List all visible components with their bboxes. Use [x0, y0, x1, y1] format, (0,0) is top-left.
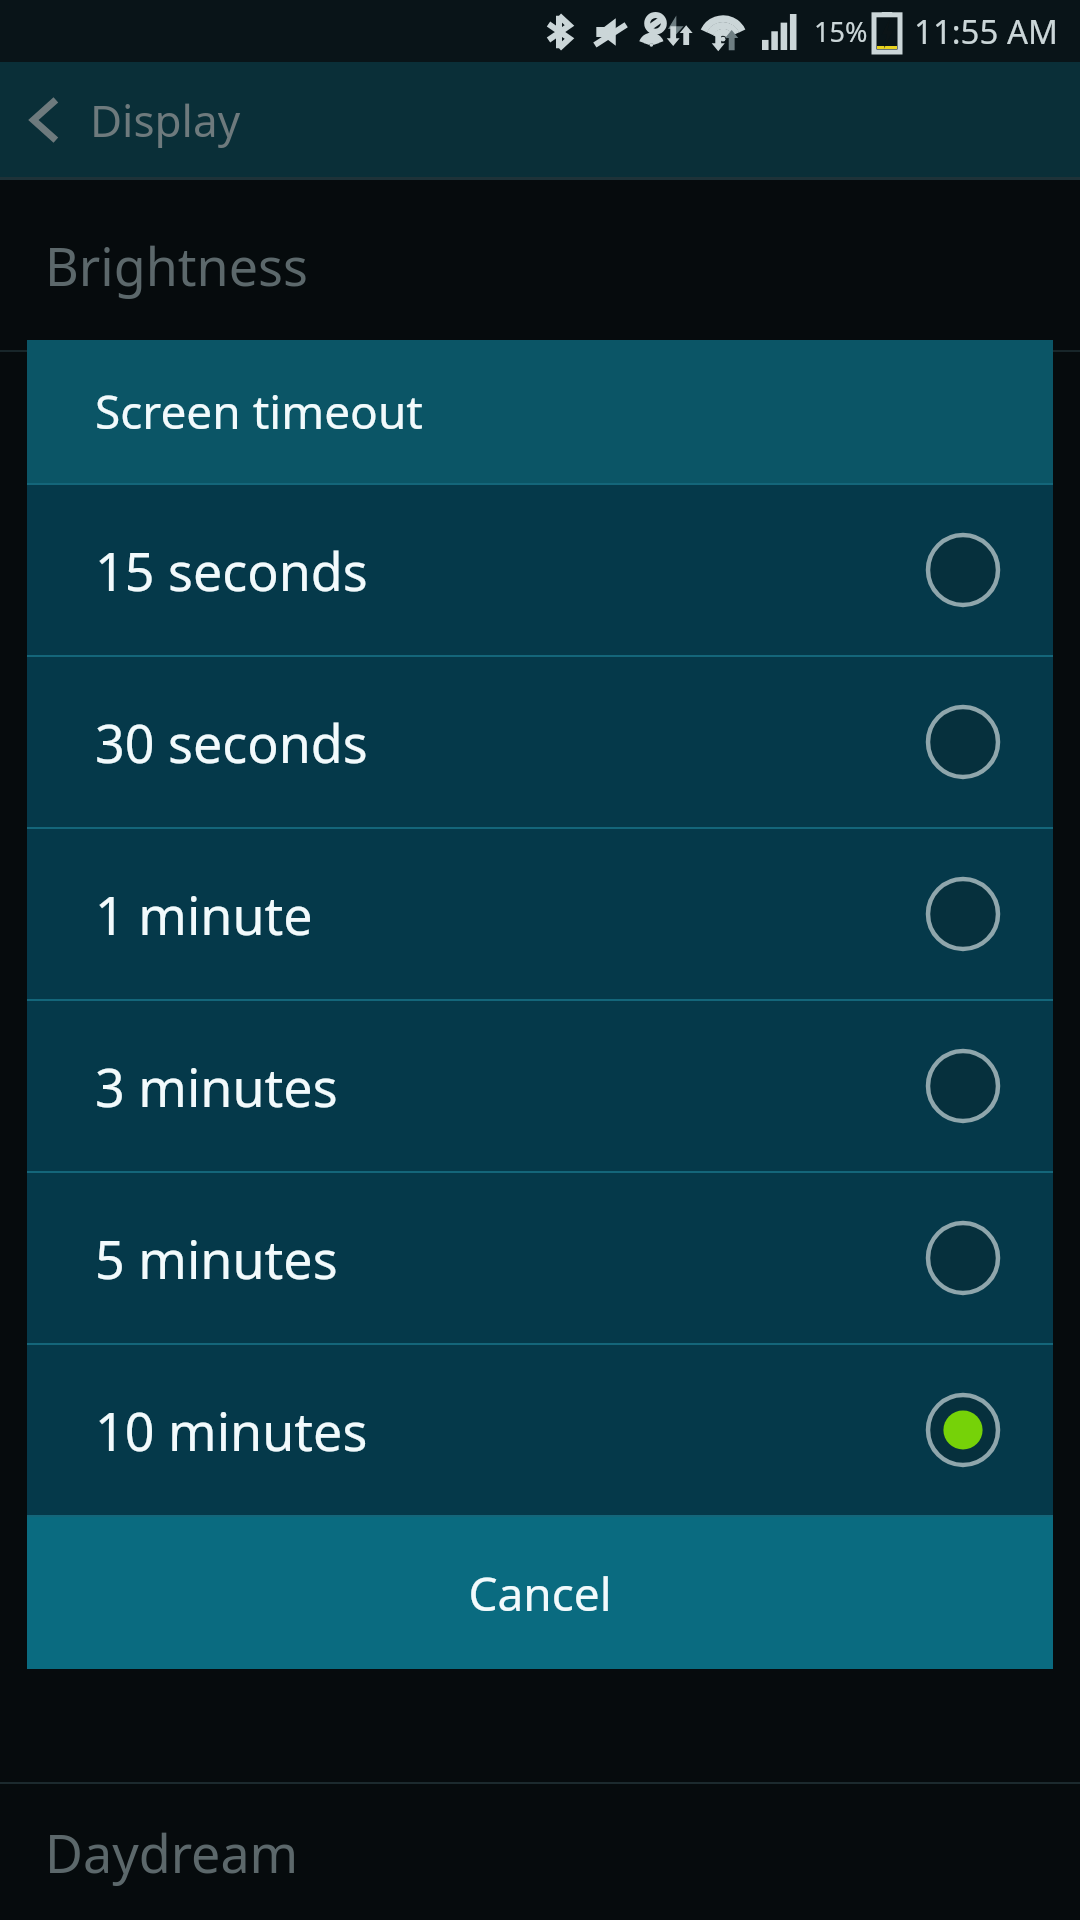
button[interactable]: Daydream: [0, 1784, 1080, 1920]
staticText: 1 minute: [95, 879, 977, 950]
button[interactable]: 1 minute: [27, 829, 1053, 999]
staticText: 10 minutes: [95, 1395, 977, 1466]
staticText: 15%: [814, 13, 868, 50]
staticText: Display: [90, 90, 241, 150]
button[interactable]: 15 seconds: [27, 485, 1053, 655]
staticText: Brightness: [45, 230, 308, 301]
other: Back: [28, 96, 62, 144]
button[interactable]: 30 seconds: [27, 657, 1053, 827]
staticText: 15 seconds: [95, 535, 977, 606]
staticText: 5 minutes: [95, 1223, 977, 1294]
button[interactable]: Brightness: [0, 180, 1080, 350]
button[interactable]: Adjust the display brightness based on t…: [0, 1532, 1080, 1782]
button[interactable]: Back: [0, 62, 1080, 177]
button[interactable]: Cancel: [27, 1517, 1053, 1669]
staticText: Adjust the display brightness based on t…: [48, 1550, 728, 1596]
button[interactable]: 3 minutes: [27, 1001, 1053, 1171]
button[interactable]: 5 minutes: [27, 1173, 1053, 1343]
staticText: Cancel: [468, 1562, 612, 1625]
staticText: Screen timeout: [95, 380, 423, 443]
staticText: Daydream: [45, 1817, 299, 1888]
staticText: 11:55 AM: [914, 9, 1058, 54]
staticText: 3 minutes: [95, 1051, 977, 1122]
button[interactable]: 10 minutes: [27, 1345, 1053, 1515]
staticText: 30 seconds: [95, 707, 977, 778]
